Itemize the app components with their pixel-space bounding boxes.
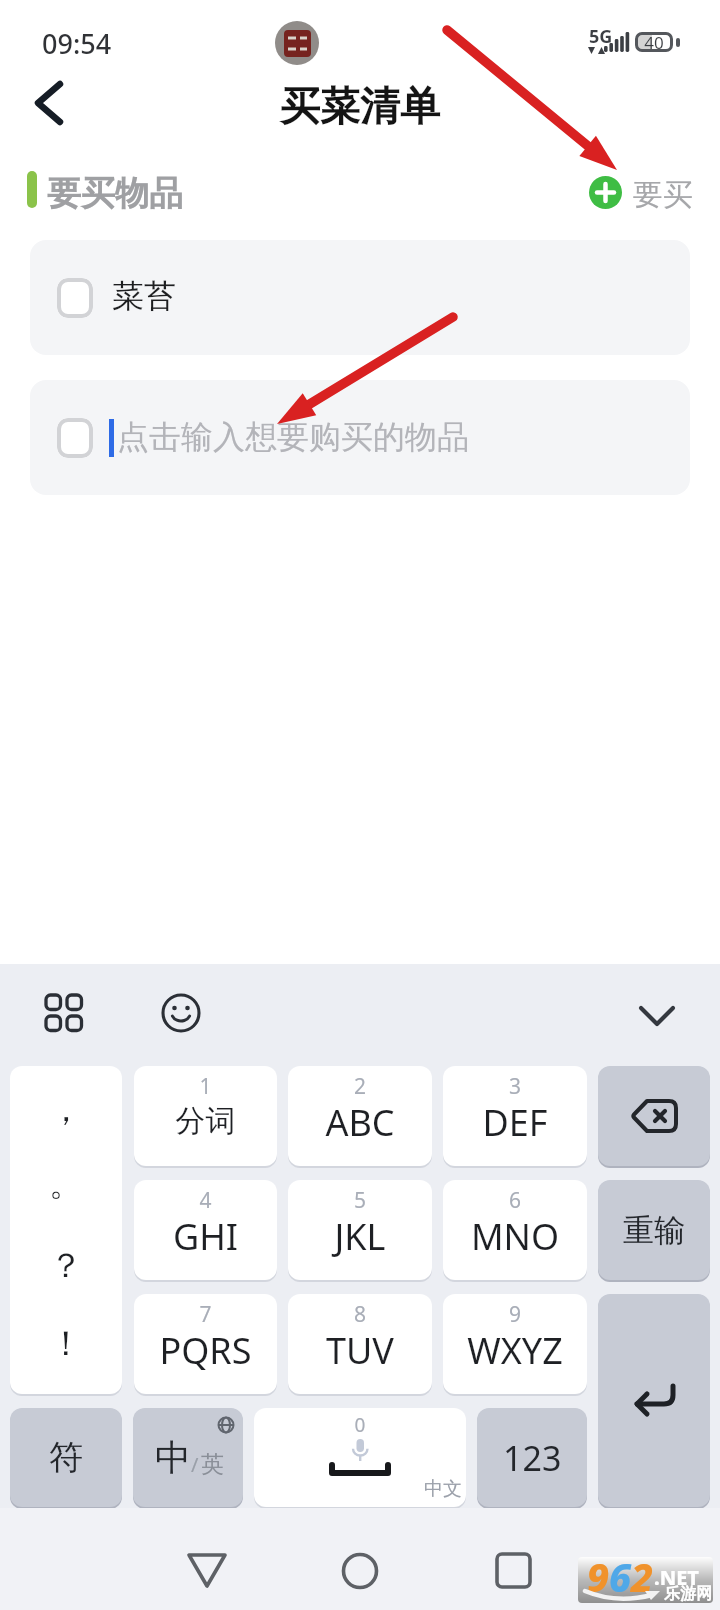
button[interactable] (185, 1548, 231, 1592)
staticText: GHI (134, 1212, 277, 1261)
staticText: 重输 (623, 1211, 685, 1250)
staticText: 符 (49, 1436, 83, 1479)
button[interactable] (338, 1548, 382, 1592)
staticText: 1 (134, 1072, 277, 1101)
staticText: 菜苔 (112, 276, 176, 316)
staticText: 7 (134, 1300, 277, 1329)
button[interactable]: 0 (254, 1408, 466, 1507)
button[interactable] (30, 80, 74, 126)
button[interactable] (598, 1294, 710, 1507)
staticText: .NET (654, 1564, 699, 1591)
staticText: ， (10, 1088, 122, 1131)
staticText: 分词 (134, 1102, 277, 1140)
button[interactable]: 1 (134, 1066, 277, 1166)
button[interactable] (57, 278, 93, 318)
button[interactable]: 7 (134, 1294, 277, 1394)
staticText: 09:54 (42, 25, 112, 62)
staticText: 962 (587, 1557, 653, 1596)
button[interactable] (492, 1548, 536, 1592)
staticText: 要买 (633, 176, 693, 214)
staticText: 。 (10, 1162, 122, 1205)
staticText: 8 (288, 1300, 432, 1329)
staticText: WXYZ (443, 1326, 587, 1375)
button[interactable] (634, 998, 680, 1032)
staticText: 中文 (424, 1477, 462, 1501)
staticText: 3 (443, 1072, 587, 1101)
staticText: 40 (635, 31, 673, 54)
button[interactable]: 123 (477, 1408, 587, 1507)
button[interactable]: 3 (443, 1066, 587, 1166)
button[interactable]: 5 (288, 1180, 432, 1280)
staticText: MNO (443, 1212, 587, 1261)
button[interactable]: 符 (10, 1408, 122, 1507)
button[interactable] (44, 993, 84, 1033)
button[interactable] (30, 240, 690, 355)
staticText: ABC (288, 1098, 432, 1147)
button[interactable] (598, 1066, 710, 1166)
staticText: 点击输入想要购买的物品 (117, 417, 469, 457)
button[interactable]: 中 (133, 1408, 243, 1507)
button[interactable]: 2 (288, 1066, 432, 1166)
staticText: TUV (288, 1326, 432, 1375)
staticText: 4 (134, 1186, 277, 1215)
button[interactable] (57, 418, 93, 458)
button[interactable]: 4 (134, 1180, 277, 1280)
staticText: 123 (503, 1435, 562, 1481)
staticText: 5 (288, 1186, 432, 1215)
staticText: JKL (288, 1212, 432, 1261)
button[interactable]: 8 (288, 1294, 432, 1394)
button[interactable]: 重输 (598, 1180, 710, 1280)
button[interactable] (30, 380, 690, 495)
staticText: 买菜清单 (0, 81, 720, 131)
button[interactable]: 9 (443, 1294, 587, 1394)
staticText: 英 (201, 1450, 224, 1479)
button[interactable] (162, 994, 202, 1034)
staticText: 乐游网 (664, 1584, 712, 1603)
staticText: 要买物品 (47, 172, 183, 215)
staticText: ？ (10, 1244, 122, 1287)
staticText: / (191, 1451, 199, 1478)
staticText: 0 (254, 1412, 466, 1438)
staticText: 6 (443, 1186, 587, 1215)
staticText: PQRS (134, 1326, 277, 1375)
staticText: ！ (10, 1322, 122, 1365)
button[interactable]: 要买 (585, 173, 695, 213)
staticText: DEF (443, 1098, 587, 1147)
staticText: 中 (155, 1435, 191, 1480)
staticText: 2 (288, 1072, 432, 1101)
button[interactable]: 6 (443, 1180, 587, 1280)
staticText: 9 (443, 1300, 587, 1329)
button[interactable]: ， (10, 1066, 122, 1394)
staticText: 5G (589, 24, 613, 49)
